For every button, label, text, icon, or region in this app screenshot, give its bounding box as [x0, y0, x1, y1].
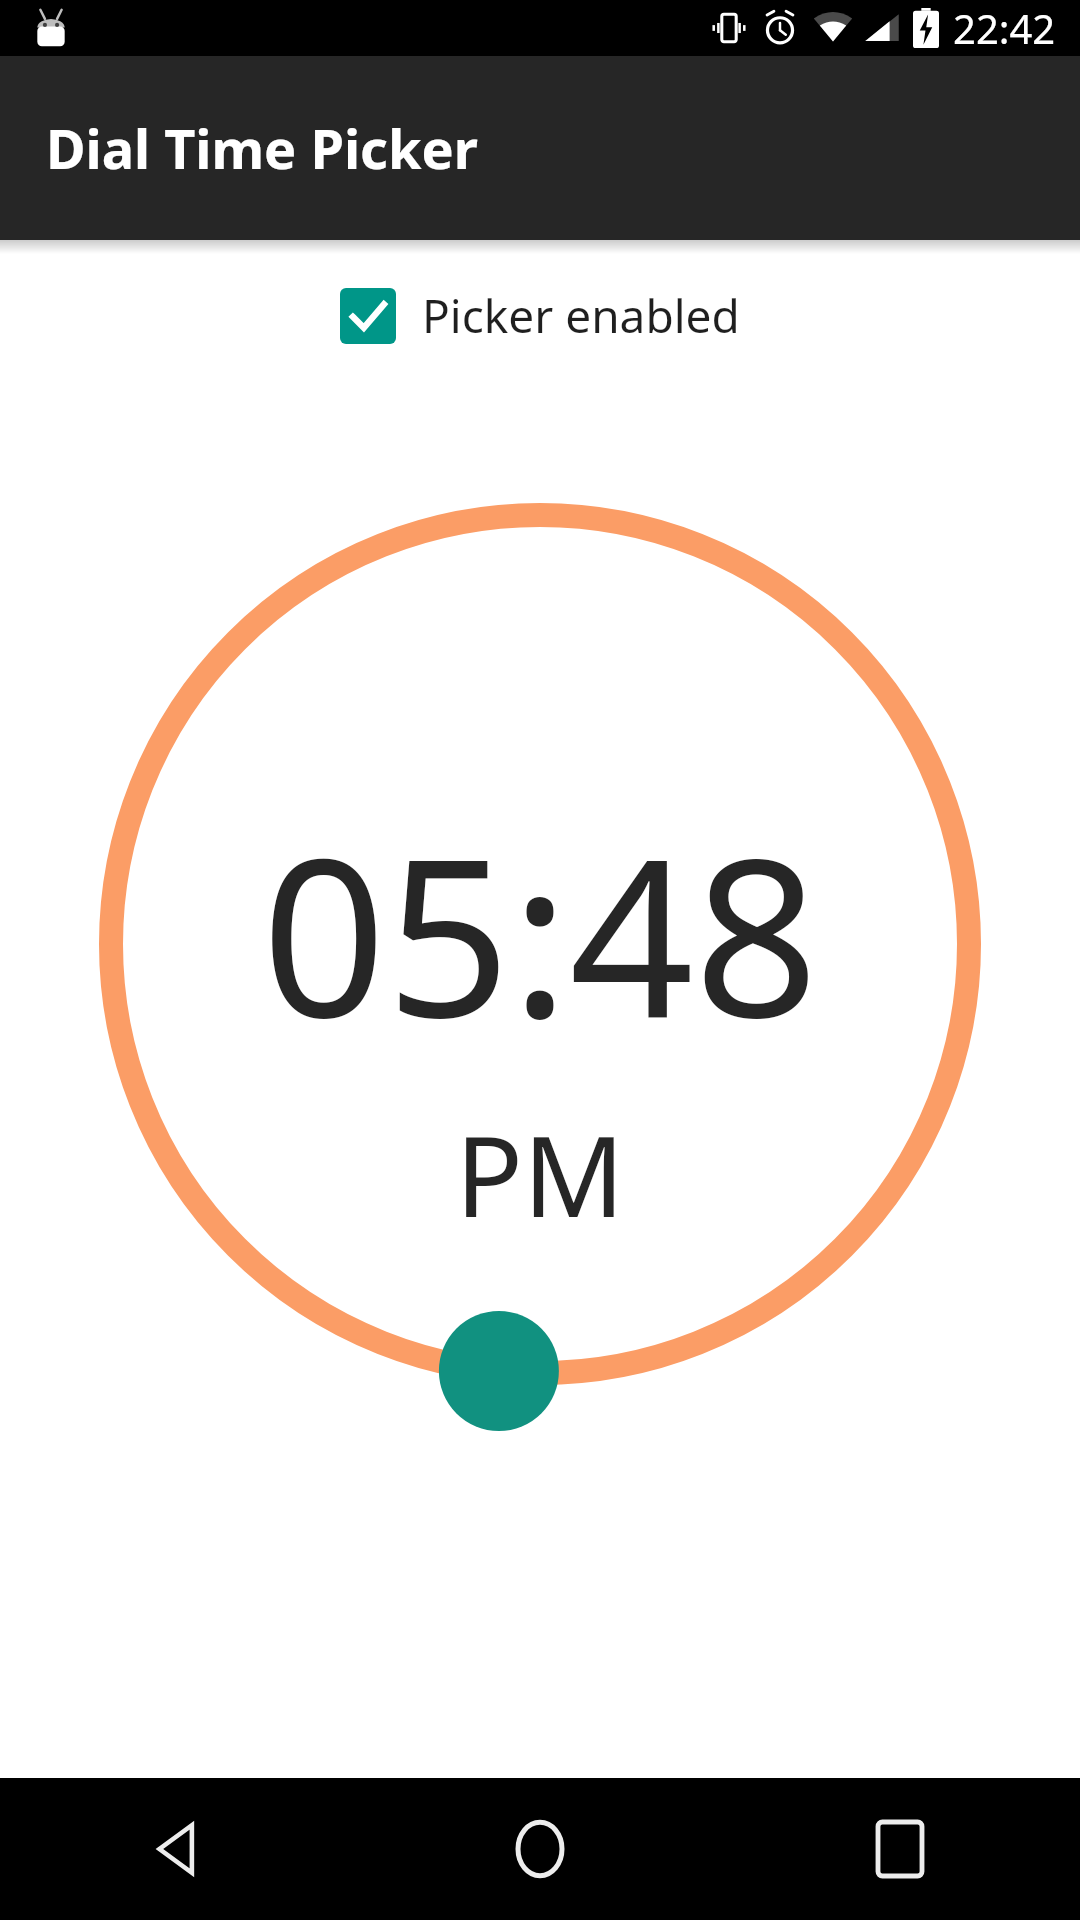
staticText: Dial Time Picker — [46, 111, 478, 185]
button[interactable]: Time dial picker, 05:48 PM — [0, 484, 1080, 1424]
staticText: 22:42 — [953, 1, 1056, 55]
button[interactable]: Recent apps — [720, 1778, 1080, 1920]
staticText: Picker enabled — [422, 284, 740, 347]
button[interactable]: Picker enabled — [332, 278, 748, 353]
staticText: 05:48 — [261, 784, 819, 1081]
staticText: PM — [455, 1097, 625, 1250]
button[interactable]: Home — [360, 1778, 720, 1920]
button[interactable]: Back — [0, 1778, 360, 1920]
